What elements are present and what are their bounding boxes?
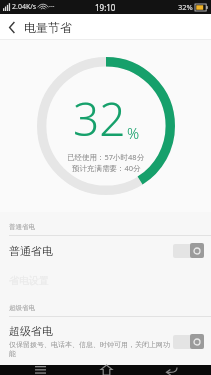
staticText: 仅保留拨号、电话本、信息、时钟可用，关闭上网功能	[9, 340, 173, 358]
staticText: 普通省电	[9, 244, 53, 258]
staticText: 电量节省	[24, 20, 72, 35]
staticText: 省电设置	[9, 274, 49, 287]
staticText: 预计充满需要：40分	[72, 163, 141, 173]
button[interactable]: Toggle	[173, 243, 204, 258]
staticText: 普通省电	[9, 223, 35, 231]
staticText: 超级省电	[9, 304, 35, 312]
button[interactable]: Toggle	[173, 334, 204, 349]
staticText: 32	[73, 87, 126, 150]
button[interactable]: Home	[80, 365, 132, 375]
button[interactable]: Back	[0, 14, 24, 40]
button[interactable]: 超级省电	[0, 317, 211, 365]
staticText: %	[127, 123, 140, 143]
staticText: ···	[49, 2, 55, 12]
staticText: 32%	[178, 2, 193, 12]
button[interactable]: Back	[145, 365, 197, 375]
button[interactable]: 普通省电	[0, 236, 211, 265]
staticText: 超级省电	[9, 324, 53, 338]
staticText: 19:10	[95, 2, 116, 13]
staticText: 2.04K/s	[12, 2, 37, 12]
button[interactable]: Recents	[14, 365, 66, 375]
staticText: 已经使用：57小时48分	[67, 152, 145, 162]
